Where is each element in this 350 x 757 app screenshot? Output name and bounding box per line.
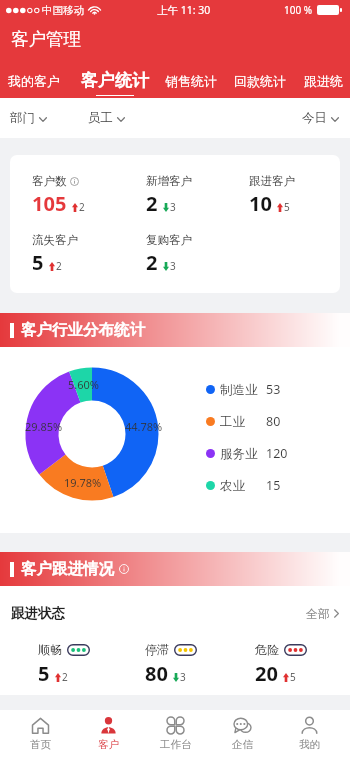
- button[interactable]: 今日: [302, 110, 339, 126]
- button[interactable]: 跟进统计: [304, 73, 350, 96]
- staticText: 5: [290, 670, 296, 684]
- staticText: 53: [266, 381, 281, 398]
- staticText: 制造业: [220, 382, 258, 398]
- staticText: 新增客户: [146, 174, 192, 188]
- staticText: 工业: [220, 414, 245, 430]
- staticText: 顺畅: [38, 642, 62, 657]
- button[interactable]: 跟进状态: [0, 586, 350, 641]
- staticText: 29.85%: [25, 419, 63, 434]
- staticText: 2: [56, 259, 62, 273]
- staticText: 2: [146, 249, 158, 276]
- staticText: 员工: [88, 110, 113, 126]
- staticText: 15: [266, 477, 281, 494]
- staticText: 回款统计: [234, 73, 286, 89]
- staticText: 80: [145, 660, 168, 687]
- staticText: 跟进客户: [249, 174, 295, 188]
- button[interactable]: 我的: [276, 710, 343, 757]
- button[interactable]: 回款统计: [234, 73, 286, 96]
- staticText: 5.60%: [68, 377, 99, 392]
- staticText: 3: [170, 259, 176, 273]
- button[interactable]: 客户统计: [81, 70, 149, 96]
- staticText: 工作台: [160, 738, 192, 751]
- staticText: 中国移动: [42, 4, 84, 17]
- staticText: 农业: [220, 478, 245, 494]
- staticText: 100 %: [284, 3, 313, 17]
- staticText: 120: [266, 445, 288, 462]
- staticText: 我的: [299, 738, 320, 751]
- staticText: 客户跟进情况: [21, 559, 114, 579]
- staticText: 2: [146, 190, 158, 217]
- button[interactable]: 首页: [6, 710, 74, 757]
- staticText: 客户行业分布统计: [21, 320, 145, 340]
- staticText: 客户统计: [81, 70, 149, 91]
- staticText: 上午 11: 30: [157, 3, 211, 17]
- staticText: 跟进统计: [304, 73, 350, 89]
- staticText: 停滞: [145, 642, 169, 657]
- staticText: 首页: [30, 738, 51, 751]
- staticText: 我的客户: [8, 73, 60, 89]
- staticText: 危险: [255, 642, 279, 657]
- staticText: 跟进状态: [11, 605, 65, 622]
- button[interactable]: 企信: [209, 710, 276, 757]
- staticText: 80: [266, 413, 281, 430]
- staticText: 流失客户: [32, 233, 78, 247]
- staticText: 客户管理: [11, 28, 81, 50]
- staticText: 105: [32, 190, 67, 217]
- staticText: 5: [38, 660, 50, 687]
- button[interactable]: 员工: [88, 110, 125, 126]
- staticText: 5: [284, 200, 290, 214]
- button[interactable]: 我的客户: [8, 73, 60, 96]
- staticText: 复购客户: [146, 233, 192, 247]
- staticText: 客户: [98, 738, 119, 751]
- staticText: 20: [255, 660, 278, 687]
- button[interactable]: 部门: [10, 110, 47, 126]
- staticText: 全部: [306, 606, 330, 621]
- staticText: 今日: [302, 110, 327, 126]
- staticText: 3: [180, 670, 186, 684]
- button[interactable]: 工作台: [142, 710, 209, 757]
- staticText: 企信: [232, 738, 253, 751]
- staticText: 3: [170, 200, 176, 214]
- staticText: 销售统计: [165, 73, 217, 89]
- button[interactable]: 客户: [74, 710, 142, 757]
- staticText: 10: [249, 190, 272, 217]
- staticText: 2: [62, 670, 68, 684]
- staticText: 客户数: [32, 174, 67, 188]
- staticText: 2: [79, 200, 85, 214]
- staticText: 44.78%: [125, 419, 163, 434]
- staticText: 部门: [10, 110, 35, 126]
- staticText: 19.78%: [64, 475, 102, 490]
- button[interactable]: 销售统计: [165, 73, 217, 96]
- staticText: 服务业: [220, 446, 258, 462]
- staticText: 5: [32, 249, 44, 276]
